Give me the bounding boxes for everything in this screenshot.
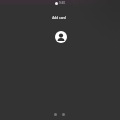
button[interactable]: Page indicator — [54, 113, 65, 116]
staticText: Add card — [52, 16, 66, 20]
staticText: 9:30 — [59, 1, 65, 5]
button[interactable]: Account — [55, 31, 67, 43]
